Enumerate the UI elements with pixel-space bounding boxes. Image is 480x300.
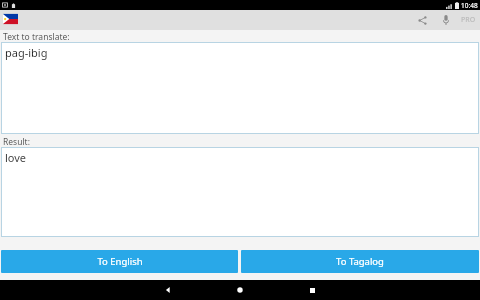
staticText: To English bbox=[97, 255, 143, 268]
button[interactable]: To Tagalog bbox=[241, 250, 479, 273]
button[interactable]: Share bbox=[413, 11, 431, 29]
button[interactable]: Voice input bbox=[437, 11, 455, 29]
button[interactable]: App icon bbox=[2, 12, 19, 29]
staticText: love bbox=[5, 150, 27, 165]
staticText: Text to translate: bbox=[3, 31, 70, 42]
button[interactable]: Home bbox=[228, 280, 252, 300]
staticText: Result: bbox=[3, 136, 30, 147]
button[interactable]: To English bbox=[1, 250, 238, 273]
staticText: PRO bbox=[461, 15, 476, 25]
button[interactable]: PRO bbox=[461, 11, 476, 29]
button[interactable]: Recent apps bbox=[300, 280, 324, 300]
staticText: pag-ibig bbox=[5, 45, 48, 60]
button[interactable]: love bbox=[1, 147, 479, 237]
button[interactable]: pag-ibig bbox=[1, 42, 479, 134]
staticText: To Tagalog bbox=[336, 255, 384, 268]
staticText: 10:48 bbox=[461, 1, 478, 10]
button[interactable]: Back bbox=[156, 280, 180, 300]
